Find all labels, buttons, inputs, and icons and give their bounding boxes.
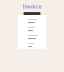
staticText: Invoice <box>22 3 41 10</box>
